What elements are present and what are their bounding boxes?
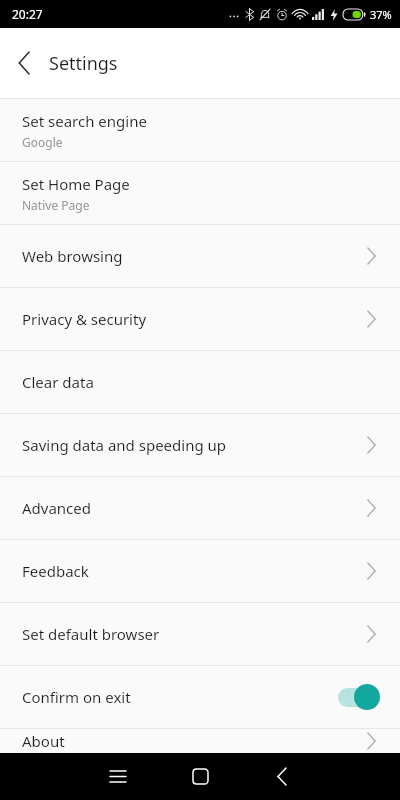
- staticText: Saving data and speeding up: [22, 435, 227, 455]
- staticText: Feedback: [22, 561, 89, 581]
- staticText: Confirm on exit: [22, 687, 131, 707]
- button[interactable]: Web browsing: [0, 225, 400, 287]
- staticText: Privacy & security: [22, 309, 147, 329]
- button[interactable]: Privacy & security: [0, 288, 400, 350]
- staticText: Set Home Page: [22, 174, 130, 194]
- button[interactable]: Home: [159, 753, 241, 800]
- staticText: Clear data: [22, 372, 94, 392]
- button[interactable]: Clear data: [0, 351, 400, 413]
- staticText: Settings: [49, 51, 118, 76]
- button[interactable]: Saving data and speeding up: [0, 414, 400, 476]
- button[interactable]: Set search engine: [0, 99, 400, 161]
- button[interactable]: Set default browser: [0, 603, 400, 665]
- staticText: Set search engine: [22, 111, 147, 131]
- staticText: 37%: [370, 7, 392, 22]
- button[interactable]: About: [0, 729, 400, 753]
- staticText: About: [22, 731, 65, 751]
- button[interactable]: Set Home Page: [0, 162, 400, 224]
- button[interactable]: Confirm on exit: [0, 666, 400, 728]
- staticText: Google: [22, 134, 63, 150]
- staticText: Advanced: [22, 498, 92, 518]
- button[interactable]: Back: [241, 753, 323, 800]
- staticText: Native Page: [22, 197, 90, 213]
- button[interactable]: Back: [0, 39, 48, 87]
- button[interactable]: Feedback: [0, 540, 400, 602]
- button[interactable]: Recent apps: [77, 753, 159, 800]
- button[interactable]: Advanced: [0, 477, 400, 539]
- staticText: Web browsing: [22, 246, 123, 266]
- staticText: 20:27: [12, 6, 43, 22]
- staticText: Set default browser: [22, 624, 160, 644]
